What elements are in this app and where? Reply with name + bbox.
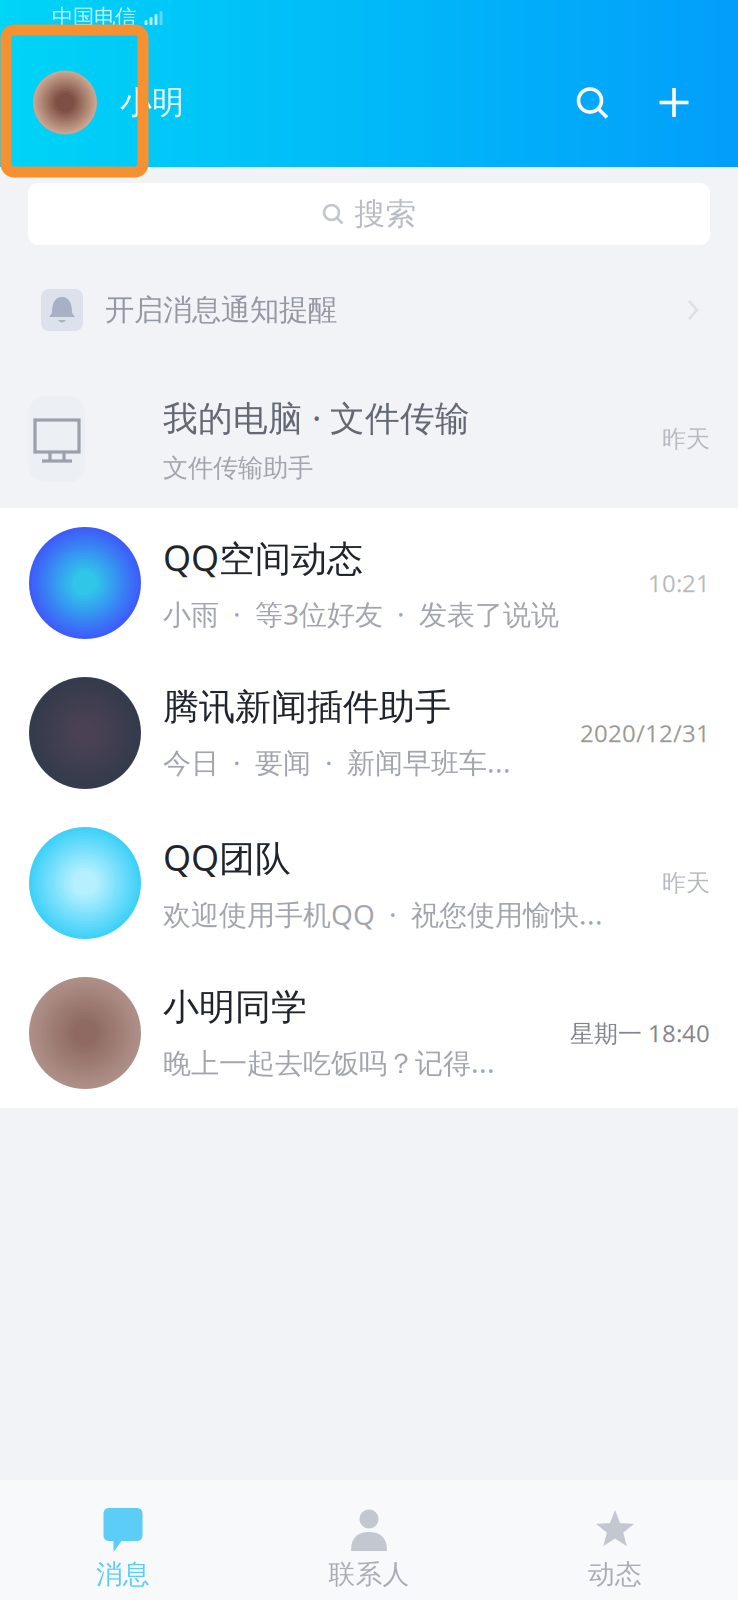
button[interactable]: 添加 <box>637 69 711 135</box>
staticText: 今日 · 要闻 · 新闻早班车推送 <box>163 743 530 781</box>
staticText: 中国电信 <box>52 4 136 30</box>
staticText: 小雨 · 等3位好友 · 发表了说说 <box>163 595 559 633</box>
staticText: QQ团队 <box>163 833 291 881</box>
staticText: 搜索 <box>354 195 416 233</box>
button[interactable]: 消息 <box>0 1480 246 1600</box>
staticText: 开启消息通知提醒 <box>105 292 337 328</box>
staticText: 2020/12/31 <box>580 717 710 749</box>
staticText: 腾讯新闻插件助手 <box>163 685 451 729</box>
button[interactable]: QQ团队 <box>0 808 738 958</box>
staticText: 联系人 <box>328 1558 409 1591</box>
button[interactable]: 动态 <box>492 1480 738 1600</box>
staticText: 小明 <box>120 83 184 122</box>
staticText: QQ空间动态 <box>163 533 363 581</box>
button[interactable]: 小明同学 <box>0 958 738 1108</box>
button[interactable]: 我的电脑 · 文件传输 <box>0 370 738 508</box>
staticText: 10:21 <box>648 567 710 599</box>
button[interactable]: 开启消息通知提醒 <box>0 250 738 370</box>
button[interactable]: 个人头像 <box>33 70 120 134</box>
staticText: 小明同学 <box>163 985 307 1029</box>
button[interactable]: 联系人 <box>246 1480 492 1600</box>
staticText: 昨天 <box>662 424 710 454</box>
staticText: 文件传输助手 <box>163 452 313 484</box>
button[interactable]: 搜索 <box>547 69 637 135</box>
staticText: 动态 <box>588 1558 642 1591</box>
staticText: 消息 <box>96 1558 150 1591</box>
staticText: 我的电脑 · 文件传输 <box>163 394 470 440</box>
staticText: 昨天 <box>662 868 710 898</box>
staticText: 欢迎使用手机QQ · 祝您使用愉快每一天 <box>163 895 612 933</box>
button[interactable]: 搜索 <box>28 183 710 245</box>
button[interactable]: 腾讯新闻插件助手 <box>0 658 738 808</box>
button[interactable]: QQ空间动态 <box>0 508 738 658</box>
staticText: 晚上一起去吃饭吗？记得带伞 · 我先去占位 <box>163 1043 520 1081</box>
staticText: 星期一 18:40 <box>570 1017 710 1049</box>
